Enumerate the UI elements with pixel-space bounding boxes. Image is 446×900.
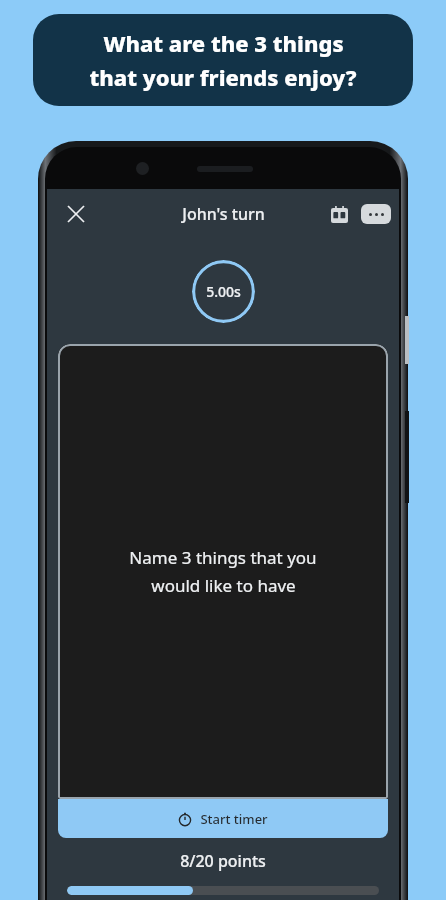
staticText: 5.00s	[206, 282, 241, 301]
staticText: would like to have	[151, 574, 296, 597]
button[interactable]: Close	[57, 195, 95, 233]
button[interactable]: Name 3 things that you	[58, 344, 388, 799]
button[interactable]: Start timer	[58, 799, 388, 838]
staticText: Start timer	[200, 810, 268, 828]
staticText: 8/20 points	[180, 850, 266, 872]
staticText: What are the 3 things	[103, 28, 344, 58]
staticText: Name 3 things that you	[129, 546, 317, 569]
staticText: John's turn	[182, 203, 265, 225]
staticText: that your friends enjoy?	[89, 62, 357, 92]
button[interactable]: Scoreboard	[321, 196, 357, 232]
button[interactable]: More options	[361, 204, 391, 224]
button[interactable]: 5.00s	[192, 260, 255, 323]
